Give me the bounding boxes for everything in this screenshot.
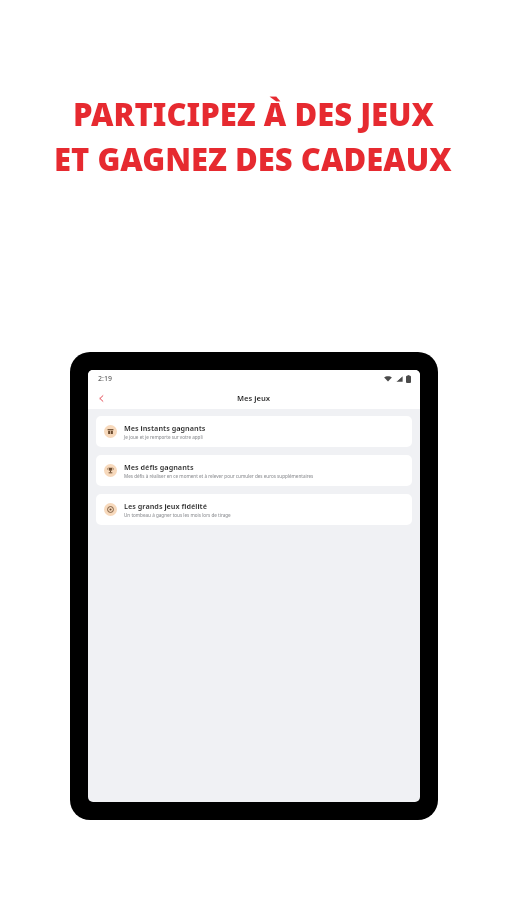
staticText: Mes défis gagnants xyxy=(124,462,194,472)
staticText: PARTICIPEZ À DES JEUX xyxy=(73,93,434,135)
staticText: Mes jeux xyxy=(237,393,271,403)
staticText: Je joue et je remporte sur votre appli xyxy=(124,434,203,440)
button[interactable]: Mes instants gagnants xyxy=(96,416,412,447)
button[interactable]: Retour xyxy=(93,390,109,406)
button[interactable]: Les grands jeux fidélité xyxy=(96,494,412,525)
staticText: Mes instants gagnants xyxy=(124,423,206,433)
staticText: ET GAGNEZ DES CADEAUX xyxy=(54,138,452,180)
button[interactable]: Mes défis gagnants xyxy=(96,455,412,486)
staticText: Un tombeau à gagner tous les mois lors d… xyxy=(124,512,231,518)
staticText: Mes défis à réaliser en ce moment et à r… xyxy=(124,473,314,479)
staticText: Les grands jeux fidélité xyxy=(124,501,207,511)
staticText: 2:19 xyxy=(98,374,112,384)
